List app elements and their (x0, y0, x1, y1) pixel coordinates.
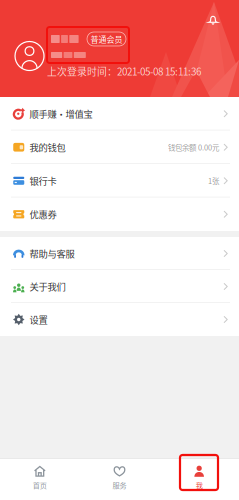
staticText: 钱包余额 0.00元 (168, 142, 219, 153)
staticText: 优惠券 (29, 207, 56, 221)
staticText: 1张 (208, 175, 219, 186)
staticText: 服务 (112, 480, 126, 490)
staticText: 顺手赚·增值宝 (29, 107, 92, 120)
button[interactable]: Notifications (202, 9, 224, 31)
button[interactable]: 我 (159, 459, 239, 500)
button[interactable]: 银行卡 (0, 164, 239, 197)
staticText: 银行卡 (29, 174, 56, 187)
button[interactable]: 普通会员 (87, 32, 126, 46)
staticText: 普通会员 (90, 33, 122, 45)
button[interactable]: 优惠券 (0, 197, 239, 231)
button[interactable]: 设置 (0, 303, 239, 336)
button[interactable]: 首页 (0, 459, 80, 500)
button[interactable]: 服务 (80, 459, 159, 500)
staticText: 我的钱包 (29, 140, 65, 154)
button[interactable]: 我的钱包 (0, 130, 239, 164)
staticText: 上次登录时间：2021-05-08 15:11:36 (47, 64, 201, 78)
button[interactable]: 顺手赚·增值宝 (0, 97, 239, 130)
staticText: 关于我们 (29, 280, 65, 293)
staticText: 首页 (33, 480, 47, 490)
button[interactable]: 关于我们 (0, 270, 239, 303)
staticText: 我 (196, 480, 203, 490)
button[interactable]: 帮助与客服 (0, 237, 239, 270)
staticText: 帮助与客服 (29, 247, 74, 260)
staticText: 设置 (29, 313, 47, 326)
